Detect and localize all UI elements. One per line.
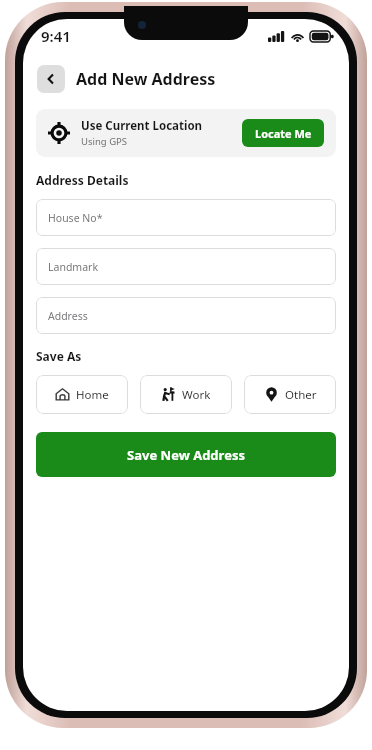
staticText: Address Details bbox=[36, 172, 129, 188]
button[interactable]: Locate Me bbox=[242, 119, 324, 147]
button[interactable]: Use Current Location bbox=[36, 109, 336, 157]
staticText: House No* bbox=[48, 211, 103, 225]
staticText: Locate Me bbox=[255, 126, 312, 141]
button[interactable]: Address bbox=[36, 297, 336, 334]
button[interactable]: Home bbox=[36, 375, 128, 414]
staticText: Address bbox=[48, 309, 88, 323]
staticText: Work bbox=[182, 387, 211, 403]
staticText: Home bbox=[76, 387, 109, 403]
button[interactable]: Other bbox=[244, 375, 336, 414]
staticText: Landmark bbox=[48, 260, 98, 274]
staticText: Save New Address bbox=[127, 446, 245, 464]
staticText: Save As bbox=[36, 348, 82, 364]
staticText: Using GPS bbox=[81, 135, 128, 148]
button[interactable]: Save New Address bbox=[36, 432, 336, 477]
staticText: Other bbox=[285, 387, 317, 403]
staticText: Add New Address bbox=[76, 68, 216, 90]
staticText: Use Current Location bbox=[81, 118, 203, 134]
button[interactable]: Back bbox=[37, 65, 65, 93]
button[interactable]: House No* bbox=[36, 199, 336, 236]
button[interactable]: Work bbox=[140, 375, 232, 414]
button[interactable]: Landmark bbox=[36, 248, 336, 285]
staticText: 9:41 bbox=[41, 26, 71, 46]
